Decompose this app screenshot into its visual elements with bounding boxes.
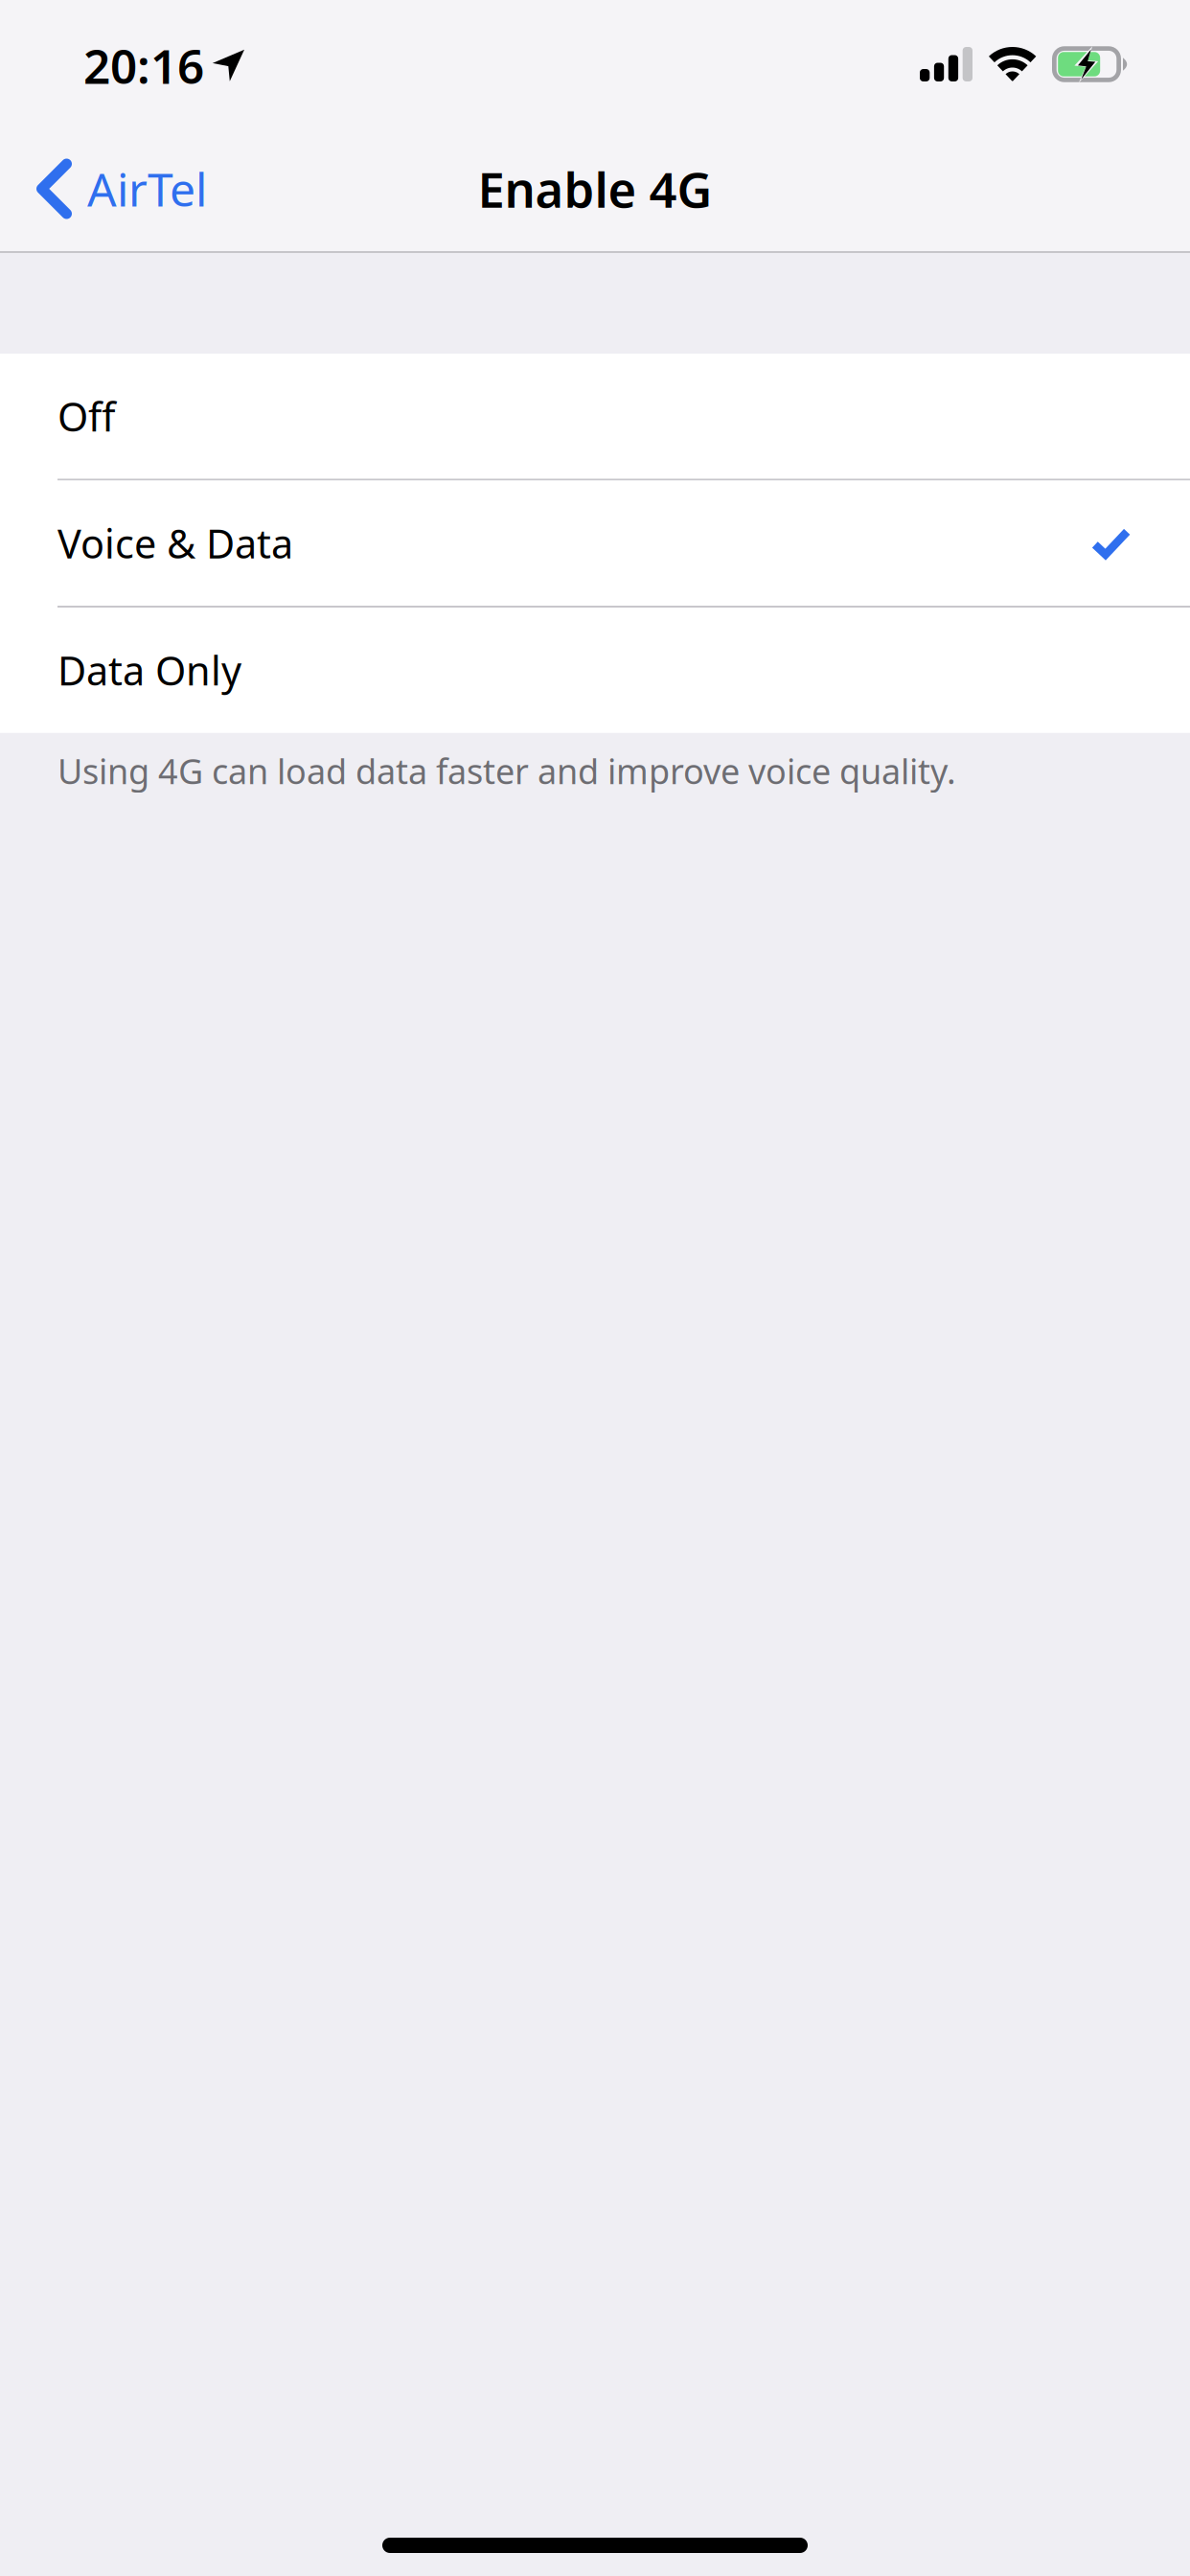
staticText: Off xyxy=(57,390,115,442)
staticText: AirTel xyxy=(87,158,207,219)
staticText: 20:16 xyxy=(83,34,204,97)
button[interactable]: Back to AirTel xyxy=(0,126,232,251)
staticText: Enable 4G xyxy=(478,157,712,221)
staticText: Using 4G can load data faster and improv… xyxy=(57,748,956,794)
staticText: Data Only xyxy=(57,644,241,696)
button[interactable]: Off xyxy=(0,354,1190,479)
staticText: Voice & Data xyxy=(57,517,293,569)
button[interactable]: Data Only xyxy=(0,608,1190,733)
button[interactable]: Voice & Data xyxy=(0,481,1190,606)
